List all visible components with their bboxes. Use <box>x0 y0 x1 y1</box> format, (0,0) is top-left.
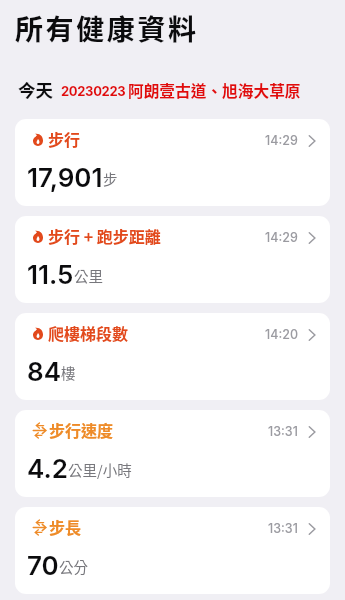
staticText: 今天 <box>18 77 53 102</box>
staticText: 14:29 <box>265 133 298 148</box>
staticText: 84 <box>27 356 61 387</box>
staticText: 13:31 <box>268 424 298 439</box>
staticText: 4.2 <box>27 453 68 484</box>
staticText: 所有健康資料 <box>15 8 199 49</box>
button[interactable]: 步行 <box>15 119 330 206</box>
staticText: 公里/小時 <box>68 459 132 480</box>
staticText: 阿朗壹古道、旭海大草原 <box>128 79 301 102</box>
other: 查看詳細資料 <box>308 134 316 148</box>
staticText: 14:29 <box>265 230 298 245</box>
button[interactable]: 步行 + 跑步距離 <box>15 216 330 303</box>
staticText: 步長 <box>49 515 82 538</box>
staticText: 爬樓梯段數 <box>48 321 129 344</box>
staticText: 樓 <box>61 362 76 383</box>
staticText: 20230223 <box>61 83 126 99</box>
staticText: 14:20 <box>265 327 298 342</box>
other: 查看詳細資料 <box>308 522 316 536</box>
staticText: 步行 <box>48 127 81 150</box>
staticText: 公里 <box>74 265 103 286</box>
staticText: 步 <box>103 168 118 189</box>
button[interactable]: 爬樓梯段數 <box>15 313 330 400</box>
staticText: 步行速度 <box>49 418 114 441</box>
staticText: 13:31 <box>268 521 298 536</box>
staticText: 70 <box>27 550 59 581</box>
button[interactable]: 步行速度 <box>15 410 330 497</box>
staticText: 公分 <box>59 556 88 577</box>
staticText: 11.5 <box>27 259 74 290</box>
staticText: 17,901 <box>27 162 103 193</box>
button[interactable]: 步長 <box>15 507 330 594</box>
other: 查看詳細資料 <box>308 231 316 245</box>
staticText: 步行 + 跑步距離 <box>48 224 161 247</box>
other: 查看詳細資料 <box>308 425 316 439</box>
other: 查看詳細資料 <box>308 328 316 342</box>
